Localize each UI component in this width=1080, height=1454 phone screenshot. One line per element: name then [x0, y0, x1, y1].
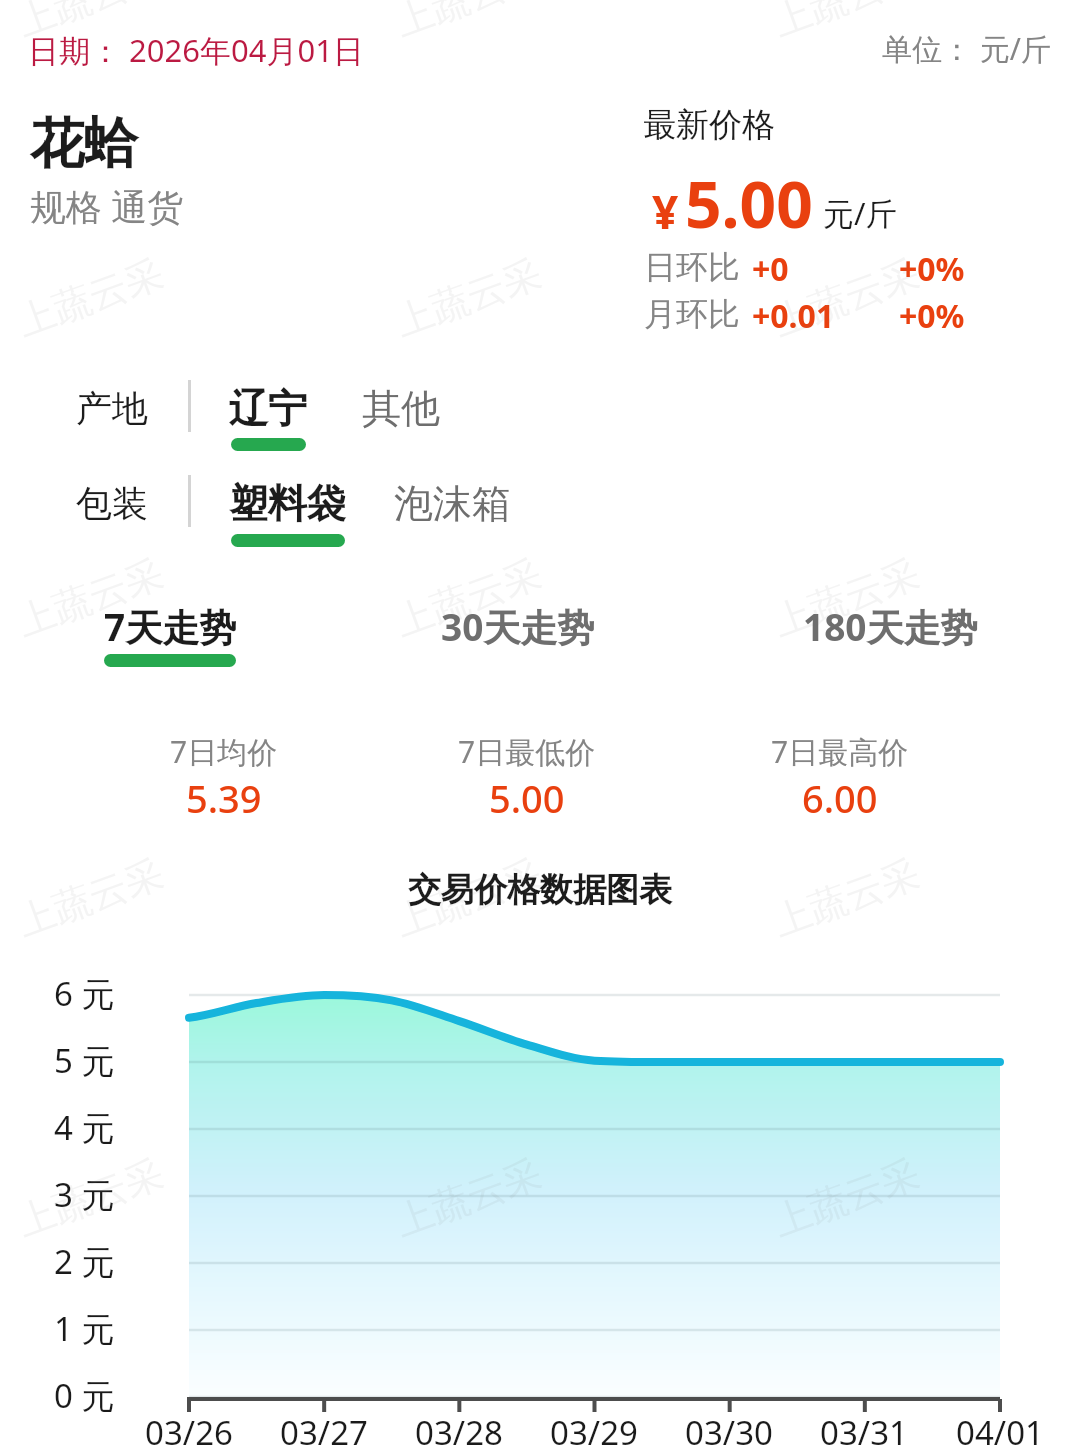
button[interactable]: 180天走势 — [795, 591, 986, 662]
staticText: 03/29 — [514, 1410, 674, 1454]
staticText: 月环比 — [644, 294, 740, 334]
staticText: 上蔬云采 — [389, 549, 548, 646]
staticText: 包装 — [76, 481, 148, 526]
staticText: 180天走势 — [803, 601, 978, 652]
staticText: 交易价格数据图表 — [0, 869, 1080, 911]
staticText: 上蔬云采 — [389, 1149, 548, 1246]
staticText: 其他 — [362, 384, 440, 433]
staticText: 04/01 — [920, 1410, 1080, 1454]
staticText: ¥ — [652, 180, 679, 243]
staticText: 03/26 — [109, 1410, 269, 1454]
staticText: 单位： 元/斤 — [882, 28, 1051, 69]
staticText: 上蔬云采 — [767, 249, 926, 346]
staticText: 03/30 — [649, 1410, 809, 1454]
staticText: 5.00 — [685, 160, 813, 247]
staticText: 上蔬云采 — [767, 549, 926, 646]
staticText: 6 元 — [54, 971, 115, 1016]
staticText: 7日最低价 — [458, 731, 596, 772]
other: 7 天价格走势图表 — [0, 0, 1080, 1454]
staticText: +0 — [752, 247, 789, 291]
staticText: 5.00 — [489, 772, 565, 824]
staticText: 7日最高价 — [771, 731, 909, 772]
staticText: 5.39 — [186, 772, 262, 824]
button[interactable]: 泡沫箱 — [386, 471, 519, 536]
button[interactable]: 辽宁 — [221, 376, 315, 459]
staticText: 花蛤 — [30, 110, 138, 178]
staticText: 元/斤 — [823, 192, 897, 234]
staticText: 30天走势 — [441, 601, 595, 652]
staticText: 03/27 — [244, 1410, 404, 1454]
staticText: 7天走势 — [104, 601, 237, 652]
staticText: 1 元 — [54, 1306, 115, 1351]
staticText: 最新价格 — [643, 104, 775, 146]
staticText: 3 元 — [54, 1172, 115, 1217]
staticText: 7日均价 — [170, 731, 278, 772]
staticText: 2 元 — [54, 1239, 115, 1284]
staticText: 上蔬云采 — [11, 1149, 170, 1246]
staticText: 规格 通货 — [30, 182, 184, 231]
button[interactable]: 其他 — [354, 376, 448, 441]
staticText: 辽宁 — [229, 384, 307, 433]
staticText: 上蔬云采 — [11, 549, 170, 646]
staticText: 0 元 — [54, 1373, 115, 1418]
staticText: +0.01 — [752, 294, 835, 338]
staticText: 上蔬云采 — [767, 0, 926, 46]
staticText: +0% — [899, 294, 965, 338]
button[interactable]: 30天走势 — [433, 591, 603, 662]
button[interactable]: 7天走势 — [96, 591, 245, 662]
staticText: 日期： 2026年04月01日 — [28, 29, 364, 71]
staticText: 上蔬云采 — [11, 0, 170, 46]
button[interactable]: 塑料袋 — [221, 471, 354, 555]
staticText: 上蔬云采 — [389, 849, 548, 946]
staticText: 塑料袋 — [229, 479, 346, 528]
staticText: 03/28 — [379, 1410, 539, 1454]
staticText: 6.00 — [802, 772, 878, 824]
staticText: 5 元 — [54, 1038, 115, 1083]
staticText: 日环比 — [644, 247, 740, 287]
staticText: 上蔬云采 — [767, 1149, 926, 1246]
staticText: 03/31 — [784, 1410, 944, 1454]
staticText: +0% — [899, 247, 965, 291]
staticText: 泡沫箱 — [394, 479, 511, 528]
staticText: 产地 — [76, 386, 148, 431]
staticText: 4 元 — [54, 1105, 115, 1150]
